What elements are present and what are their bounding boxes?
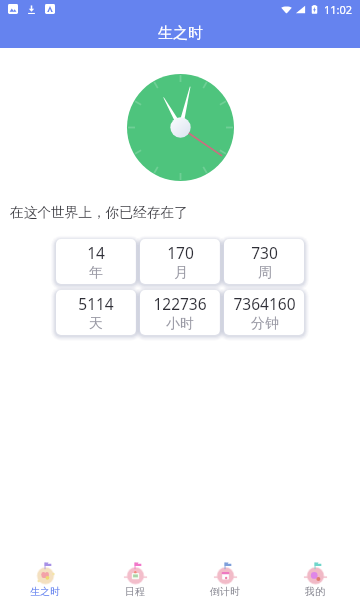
staticText: 11:02 xyxy=(324,2,353,17)
staticText: 在这个世界上，你已经存在了 xyxy=(10,204,188,221)
button[interactable]: 5114 xyxy=(56,290,136,335)
staticText: 天 xyxy=(89,315,103,333)
button[interactable]: 14 xyxy=(56,239,136,284)
staticText: 7364160 xyxy=(233,293,296,314)
staticText: 日程 xyxy=(125,585,145,598)
staticText: 5114 xyxy=(78,293,114,314)
button[interactable]: 122736 xyxy=(140,290,220,335)
staticText: 周 xyxy=(258,264,272,282)
staticText: 分钟 xyxy=(251,315,279,333)
staticText: 月 xyxy=(174,264,188,282)
staticText: 生之时 xyxy=(30,585,60,598)
button[interactable]: 7364160 xyxy=(224,290,304,335)
staticText: 我的 xyxy=(305,585,325,598)
staticText: 170 xyxy=(167,242,194,263)
button[interactable]: 倒计时 xyxy=(180,554,270,600)
staticText: 14 xyxy=(87,242,105,263)
button[interactable]: 730 xyxy=(224,239,304,284)
button[interactable]: 日程 xyxy=(90,554,180,600)
staticText: 倒计时 xyxy=(210,585,240,598)
staticText: 730 xyxy=(251,242,278,263)
button[interactable]: 170 xyxy=(140,239,220,284)
staticText: 122736 xyxy=(153,293,207,314)
staticText: 小时 xyxy=(166,315,194,333)
button[interactable]: 我的 xyxy=(270,554,360,600)
button[interactable]: 生之时 xyxy=(0,554,90,600)
staticText: 生之时 xyxy=(158,24,203,43)
staticText: 年 xyxy=(89,264,103,282)
